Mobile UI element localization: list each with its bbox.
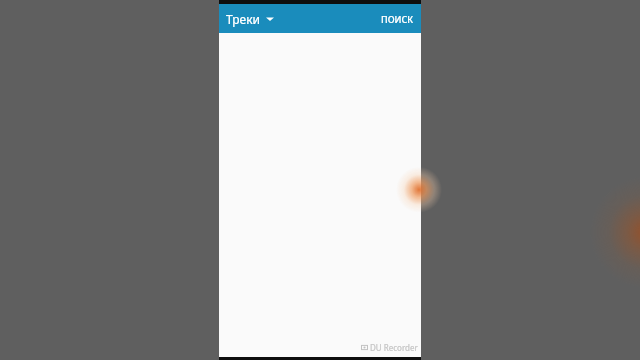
button[interactable]: Треки	[224, 7, 276, 31]
staticText: DU Recorder	[370, 342, 418, 353]
staticText: ПОИСК	[381, 13, 414, 25]
staticText: Треки	[226, 11, 261, 27]
button[interactable]: ПОИСК	[374, 6, 421, 32]
